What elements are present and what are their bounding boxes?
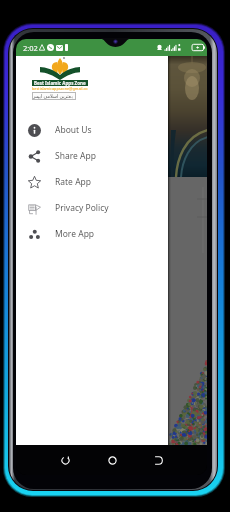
button[interactable]: More App [16,221,168,247]
staticText: Rate App [55,176,92,188]
button[interactable]: Home [103,451,121,469]
staticText: Best Islamic Apps Zone [34,80,86,86]
button[interactable]: Rate App [16,169,168,195]
button[interactable]: Back [149,451,167,469]
staticText: Share App [55,150,96,162]
button[interactable]: Privacy Policy [16,195,168,221]
staticText: More App [55,228,95,240]
staticText: 2:02 [23,43,38,53]
staticText: بہترین اسلامی ایپس زون [32,93,76,100]
button[interactable]: About Us [16,117,168,143]
staticText: About Us [55,124,92,136]
button[interactable]: Share App [16,143,168,169]
staticText: bestislamicappszone@gmail.com [32,86,88,91]
staticText: Privacy Policy [55,202,109,214]
button[interactable]: Recent apps [56,451,74,469]
